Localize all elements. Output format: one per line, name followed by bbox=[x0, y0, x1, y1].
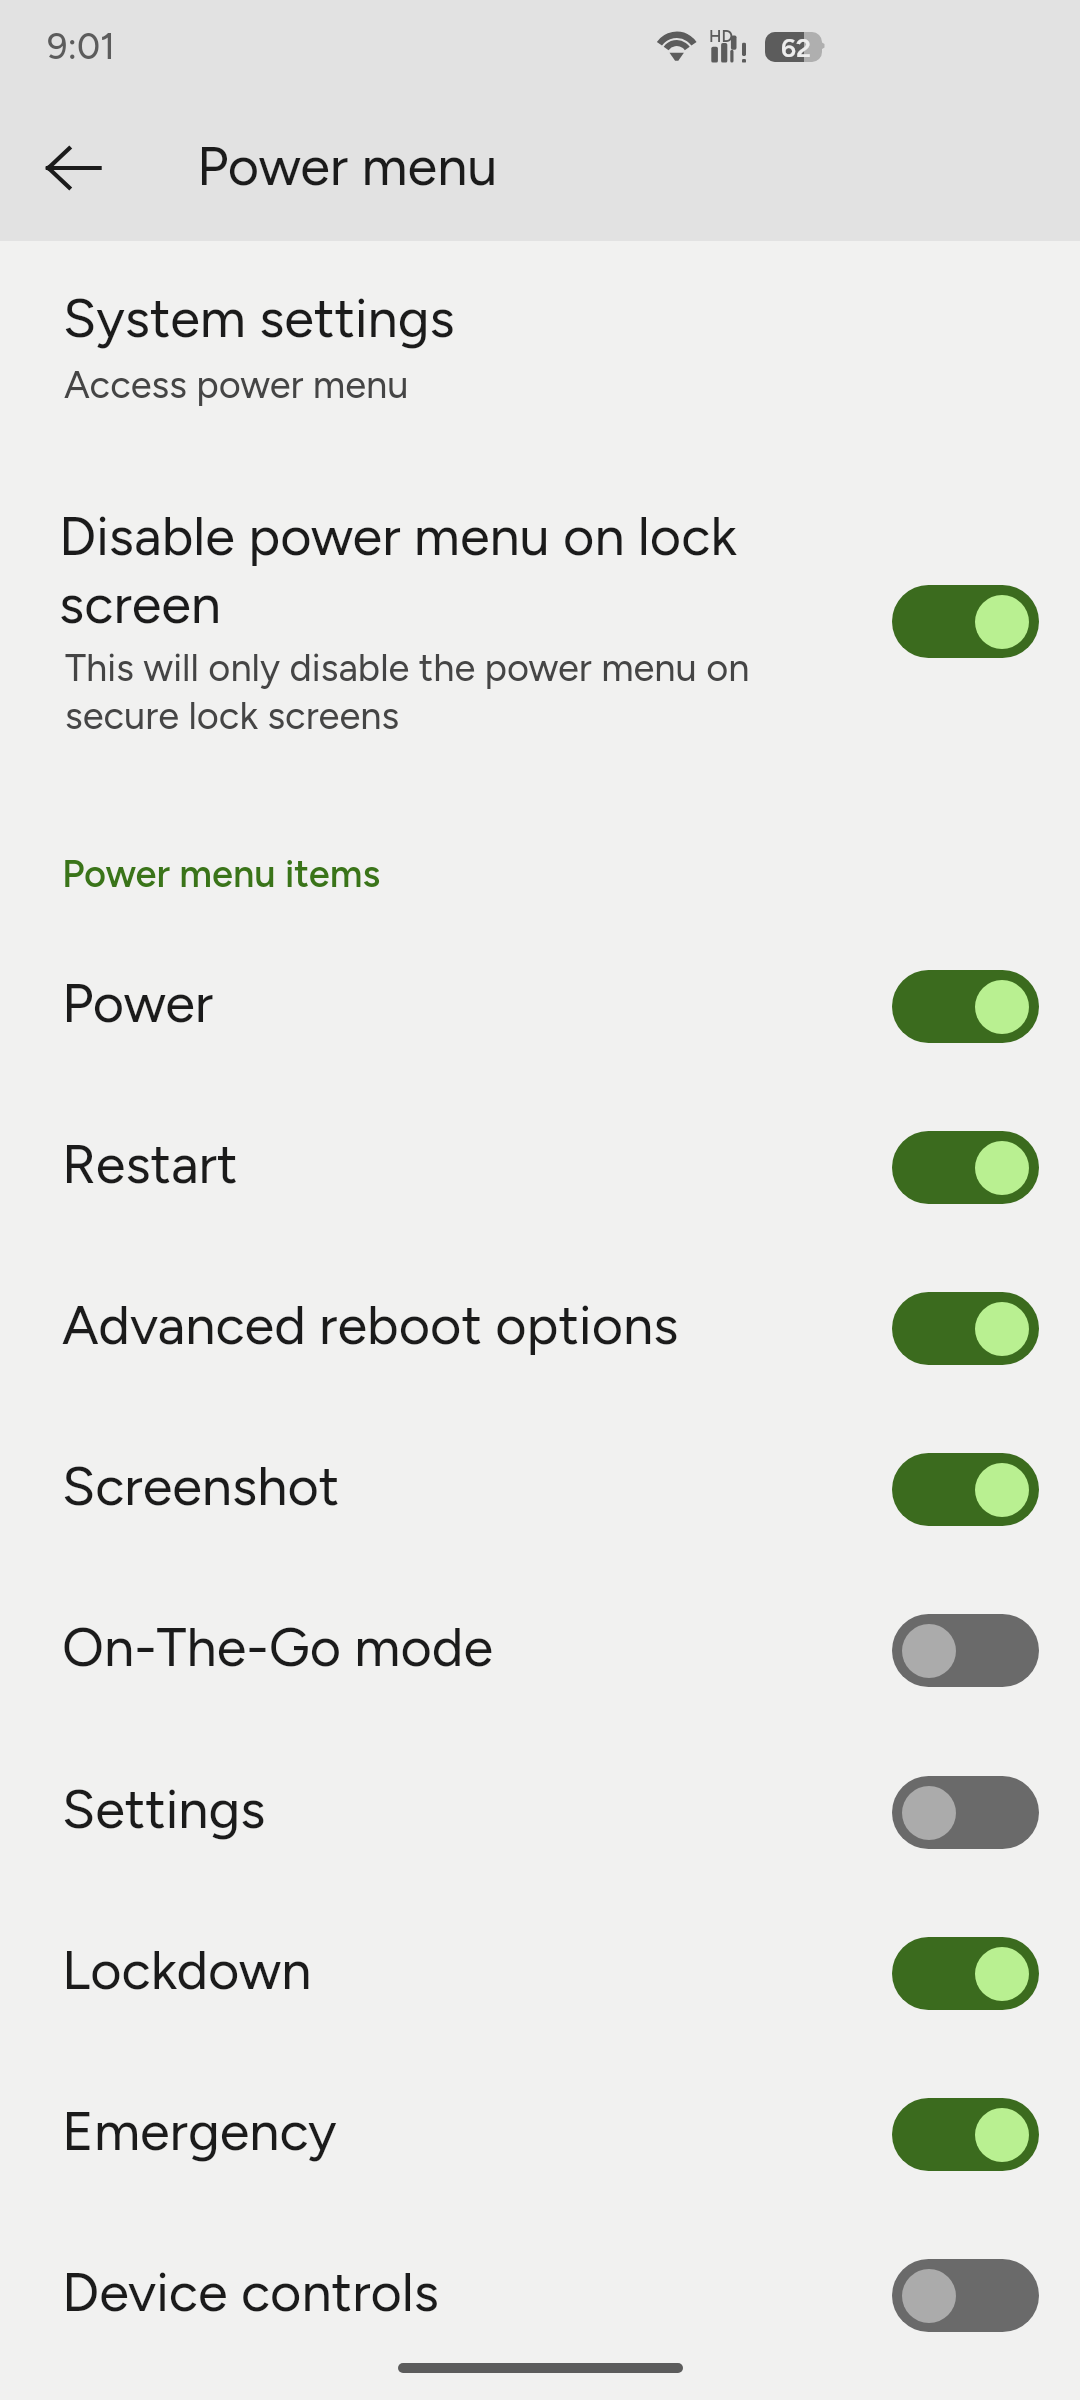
button[interactable] bbox=[0, 1889, 1080, 2050]
button[interactable]: Enabled bbox=[892, 1292, 1039, 1365]
button[interactable] bbox=[0, 1083, 1080, 1244]
button[interactable]: Disabled bbox=[892, 2259, 1039, 2332]
button[interactable] bbox=[0, 2212, 1080, 2373]
button[interactable]: Disabled bbox=[892, 1776, 1039, 1849]
staticText: Settings bbox=[62, 1777, 266, 1842]
button[interactable] bbox=[0, 1244, 1080, 1405]
button[interactable] bbox=[0, 1567, 1080, 1728]
staticText: 9:01 bbox=[47, 25, 116, 68]
button[interactable]: Enabled bbox=[892, 1453, 1039, 1526]
button[interactable]: Enabled bbox=[892, 1937, 1039, 2010]
button[interactable] bbox=[0, 1728, 1080, 1889]
button[interactable] bbox=[0, 268, 1080, 393]
button[interactable] bbox=[0, 922, 1080, 1083]
button[interactable]: Enabled bbox=[892, 970, 1039, 1043]
button[interactable] bbox=[0, 2050, 1080, 2211]
staticText: 62 bbox=[781, 32, 811, 62]
staticText: Lockdown bbox=[62, 1938, 312, 2003]
staticText: Advanced reboot options bbox=[62, 1293, 679, 1358]
staticText: Power bbox=[62, 971, 214, 1036]
button[interactable]: Enabled bbox=[892, 1131, 1039, 1204]
staticText: Device controls bbox=[62, 2260, 440, 2325]
button[interactable] bbox=[0, 487, 1080, 752]
staticText: System settings bbox=[63, 286, 455, 351]
button[interactable]: Enabled bbox=[892, 585, 1039, 658]
staticText: Power menu bbox=[197, 134, 498, 199]
button[interactable] bbox=[0, 1406, 1080, 1567]
staticText: Restart bbox=[62, 1132, 238, 1197]
staticText: Disable power menu on lock screen bbox=[59, 501, 749, 637]
staticText: Emergency bbox=[62, 2099, 337, 2164]
button[interactable]: Back bbox=[26, 121, 120, 215]
staticText: Screenshot bbox=[62, 1454, 340, 1519]
button[interactable]: Enabled bbox=[892, 2098, 1039, 2171]
staticText: HD bbox=[709, 26, 733, 46]
staticText: This will only disable the power menu on… bbox=[65, 643, 755, 739]
button[interactable]: Disabled bbox=[892, 1614, 1039, 1687]
staticText: Access power menu bbox=[64, 362, 409, 408]
staticText: On-The-Go mode bbox=[62, 1615, 493, 1680]
staticText: Power menu items bbox=[62, 851, 381, 897]
